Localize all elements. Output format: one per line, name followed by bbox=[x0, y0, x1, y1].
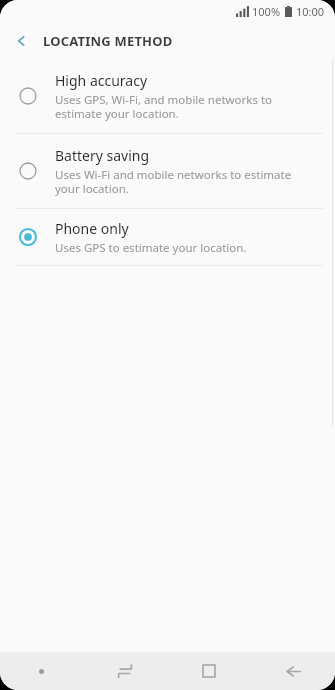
button[interactable]: Home bbox=[167, 652, 251, 690]
staticText: LOCATING METHOD bbox=[43, 32, 173, 50]
button[interactable]: Back bbox=[6, 25, 38, 57]
button[interactable]: Battery saving bbox=[0, 134, 335, 208]
button[interactable]: Keyboard indicator bbox=[0, 652, 83, 690]
staticText: Battery saving bbox=[55, 146, 150, 165]
staticText: 10:00 bbox=[296, 4, 325, 19]
button[interactable]: Recent apps bbox=[83, 652, 167, 690]
staticText: High accuracy bbox=[55, 71, 148, 90]
staticText: Uses GPS, Wi-Fi, and mobile networks to … bbox=[55, 92, 317, 121]
staticText: Uses Wi-Fi and mobile networks to estima… bbox=[55, 167, 317, 196]
button[interactable]: Back bbox=[251, 652, 335, 690]
staticText: Phone only bbox=[55, 219, 129, 238]
staticText: 100% bbox=[252, 4, 281, 19]
staticText: Uses GPS to estimate your location. bbox=[55, 240, 247, 256]
button[interactable]: Phone only bbox=[0, 209, 335, 265]
button[interactable]: High accuracy bbox=[0, 59, 335, 133]
